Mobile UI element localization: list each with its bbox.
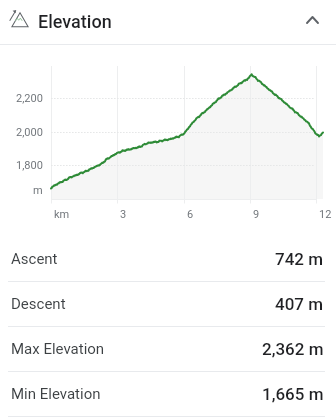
staticText: 2,200	[16, 92, 43, 105]
staticText: 12	[319, 208, 332, 221]
staticText: Max Elevation	[11, 340, 105, 358]
staticText: 6	[187, 208, 194, 221]
staticText: 3	[120, 208, 127, 221]
staticText: km	[54, 208, 70, 221]
staticText: Min Elevation	[11, 385, 101, 403]
staticText: Ascent	[11, 250, 58, 268]
button[interactable]: Elevation	[0, 0, 336, 44]
other: Collapse	[299, 9, 326, 31]
staticText: 407 m	[275, 294, 324, 314]
staticText: 1,665 m	[262, 384, 324, 404]
staticText: m	[33, 184, 43, 197]
staticText: Elevation	[38, 11, 112, 32]
staticText: 2,362 m	[262, 339, 324, 359]
button[interactable]: Min Elevation	[0, 372, 336, 416]
button[interactable]: Ascent	[0, 237, 336, 281]
staticText: 742 m	[275, 249, 324, 269]
staticText: 9	[253, 208, 260, 221]
staticText: 1,800	[16, 159, 43, 172]
button[interactable]: Descent	[0, 282, 336, 326]
staticText: 2,000	[16, 126, 43, 139]
button[interactable]: Max Elevation	[0, 327, 336, 371]
staticText: Descent	[11, 295, 66, 313]
